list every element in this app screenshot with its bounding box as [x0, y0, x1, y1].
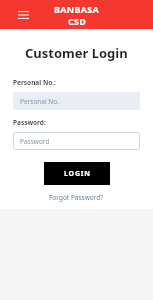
staticText: Password: — [13, 118, 46, 127]
button[interactable]: LOGIN — [44, 162, 110, 185]
button[interactable]: Password — [13, 132, 140, 150]
staticText: LOGIN — [64, 169, 91, 179]
button[interactable]: Personal No. — [13, 92, 140, 110]
staticText: Customer Login — [25, 44, 128, 62]
button[interactable]: Forgot Password? — [45, 191, 108, 204]
staticText: CSD — [68, 15, 87, 27]
staticText: Password — [20, 137, 50, 146]
staticText: Personal No. — [20, 97, 59, 106]
staticText: Forgot Password? — [49, 193, 104, 202]
staticText: BANBASA — [54, 3, 100, 15]
staticText: Personal No.: — [13, 78, 56, 87]
button[interactable]: Open navigation menu — [13, 5, 33, 25]
